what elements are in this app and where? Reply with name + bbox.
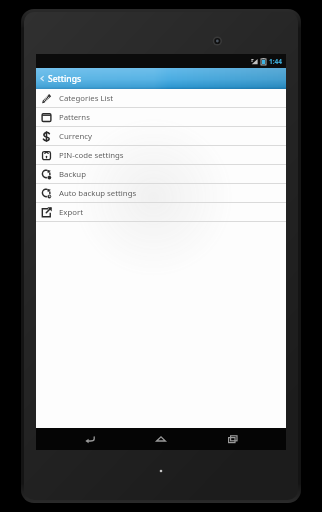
staticText: Auto backup settings bbox=[59, 188, 137, 199]
button[interactable]: Navigate up bbox=[36, 68, 286, 89]
staticText: Categories List bbox=[59, 93, 114, 104]
staticText: Currency bbox=[59, 131, 92, 142]
staticText: 1:44 bbox=[269, 57, 282, 66]
other: Navigate up bbox=[39, 75, 46, 82]
staticText: Settings bbox=[48, 73, 82, 85]
staticText: Patterns bbox=[59, 112, 90, 123]
button[interactable]: Categories List bbox=[36, 89, 286, 107]
button[interactable]: Auto backup settings bbox=[36, 184, 286, 202]
button[interactable]: Currency bbox=[36, 127, 286, 145]
staticText: PIN-code settings bbox=[59, 150, 124, 161]
button[interactable]: Recent apps bbox=[215, 428, 251, 450]
button[interactable]: Patterns bbox=[36, 108, 286, 126]
staticText: Backup bbox=[59, 169, 86, 180]
button[interactable]: Backup bbox=[36, 165, 286, 183]
button[interactable]: Back bbox=[72, 428, 108, 450]
button[interactable]: PIN-code settings bbox=[36, 146, 286, 164]
staticText: Export bbox=[59, 207, 84, 218]
button[interactable]: Home bbox=[143, 428, 179, 450]
button[interactable]: Export bbox=[36, 203, 286, 221]
